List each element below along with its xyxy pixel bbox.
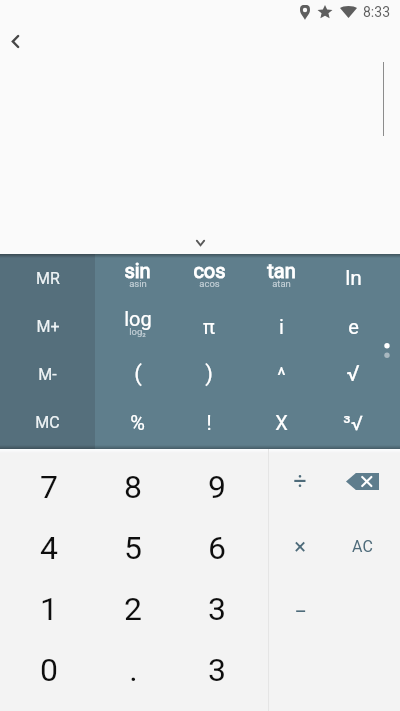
button[interactable]: 3 [175,639,259,700]
button[interactable]: 3 [175,578,259,639]
staticText: log₂ [129,326,146,337]
button[interactable]: e [317,302,389,350]
staticText: ³√ [343,411,363,434]
button[interactable]: ³√ [317,398,389,446]
button[interactable]: X [245,398,317,446]
button[interactable]: × [269,514,331,579]
button[interactable]: 1 [7,578,91,639]
staticText: 9 [208,468,226,506]
button[interactable]: log [102,302,173,350]
staticText: cos [193,259,226,282]
button[interactable]: 0 [7,639,91,700]
button[interactable]: 7 [7,456,91,517]
staticText: 4 [40,529,58,567]
button[interactable]: ! [173,398,245,446]
button[interactable]: ) [173,350,245,398]
button[interactable]: . [91,639,175,700]
staticText: √ [346,361,360,387]
button[interactable]: MC [0,398,95,446]
button[interactable]: MR [0,254,95,302]
staticText: 3 [208,590,226,628]
staticText: atan [272,278,291,289]
button[interactable]: Back [2,28,28,54]
staticText: 6 [208,529,226,567]
staticText: − [294,599,307,625]
button[interactable]: 5 [91,517,175,578]
staticText: AC [352,537,373,556]
staticText: M- [38,365,57,384]
staticText: tan [267,259,296,282]
staticText: 0 [40,651,58,689]
staticText: 7 [40,468,58,506]
staticText: i [279,315,284,338]
staticText: X [275,411,288,434]
button[interactable]: 6 [175,517,259,578]
staticText: 8 [124,468,142,506]
staticText: MR [36,269,60,288]
button[interactable]: Backspace [331,449,393,514]
staticText: ( [134,361,142,387]
staticText: log [124,307,152,330]
button[interactable]: ÷ [269,449,331,514]
button[interactable]: i [245,302,317,350]
staticText: 2 [124,590,142,628]
staticText: e [348,315,359,338]
button[interactable]: sin [102,254,173,302]
button[interactable]: M- [0,350,95,398]
button[interactable]: 2 [91,578,175,639]
button[interactable]: ln [317,254,389,302]
staticText: ^ [277,363,286,386]
button[interactable]: ( [102,350,173,398]
staticText: 3 [208,651,226,689]
staticText: asin [129,278,147,289]
button[interactable]: 9 [175,456,259,517]
button[interactable]: M+ [0,302,95,350]
button[interactable]: Collapse keypad [188,231,212,255]
staticText: ! [206,411,212,434]
button[interactable]: √ [317,350,389,398]
staticText: % [130,411,145,434]
staticText: π [203,315,215,338]
staticText: MC [35,413,60,432]
staticText: 5 [124,529,142,567]
staticText: ÷ [293,468,307,495]
staticText: sin [124,259,151,282]
staticText: ) [205,361,213,387]
staticText: M+ [36,317,60,336]
button[interactable]: % [102,398,173,446]
staticText: × [294,534,306,560]
button[interactable]: − [269,579,331,644]
button[interactable]: π [173,302,245,350]
staticText: ln [345,266,362,291]
button[interactable]: 4 [7,517,91,578]
button[interactable]: AC [331,514,393,579]
staticText: 8:33 [363,4,390,20]
button[interactable]: cos [173,254,245,302]
button[interactable]: tan [245,254,317,302]
staticText: . [129,651,138,689]
staticText: acos [199,278,220,289]
staticText: 1 [40,590,58,628]
button[interactable]: ^ [245,350,317,398]
button[interactable]: 8 [91,456,175,517]
